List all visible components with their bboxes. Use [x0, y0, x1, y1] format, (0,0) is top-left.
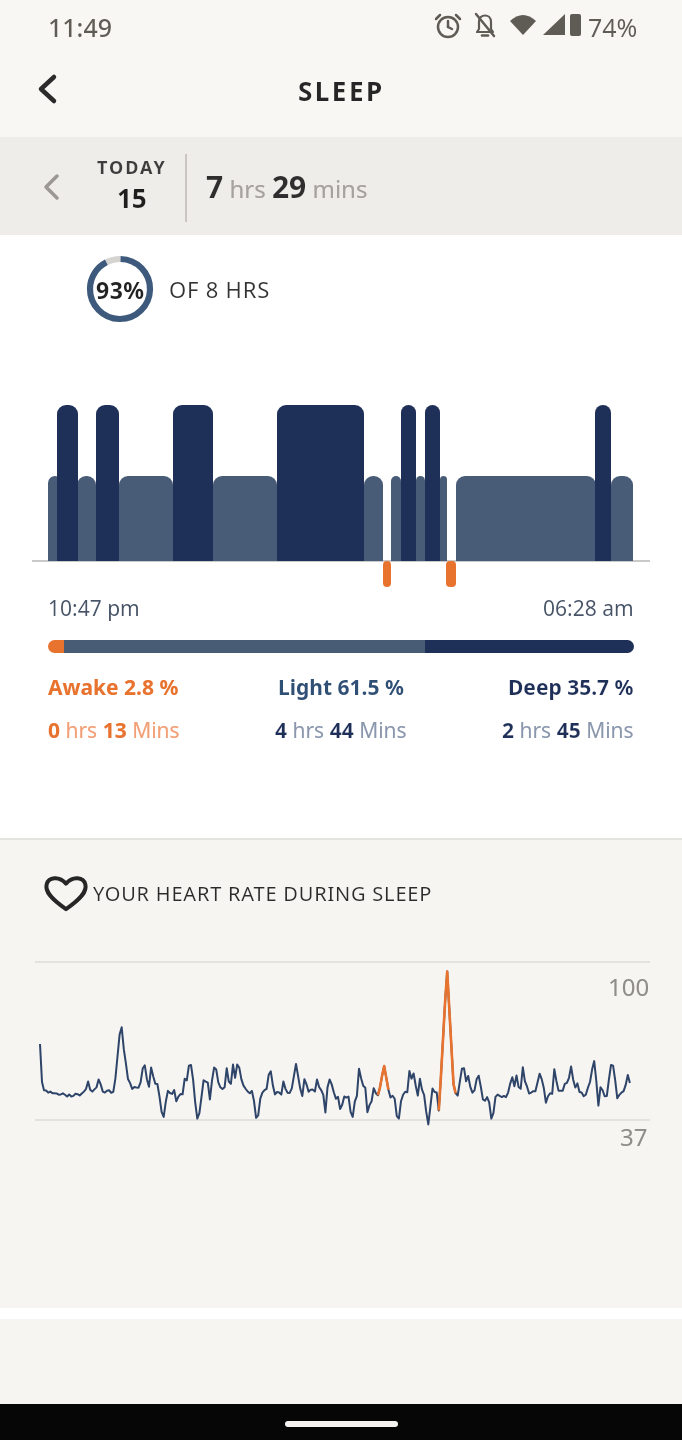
staticText: YOUR HEART RATE DURING SLEEP — [93, 880, 433, 907]
staticText: 4 hrs 44 Mins — [275, 716, 407, 745]
staticText: Awake 2.8 % — [48, 673, 179, 702]
staticText: 74% — [588, 10, 638, 40]
button[interactable] — [24, 66, 72, 114]
staticText: 100 — [608, 970, 650, 1000]
staticText: TODAY — [97, 155, 167, 180]
staticText: 06:28 am — [543, 594, 634, 623]
staticText: 15 — [117, 180, 147, 215]
staticText: OF 8 HRS — [169, 274, 271, 304]
staticText: 11:49 — [48, 10, 113, 40]
staticText: 2 hrs 45 Mins — [502, 716, 634, 745]
staticText: SLEEP — [298, 73, 385, 108]
staticText: Light 61.5 % — [278, 673, 404, 702]
button[interactable] — [0, 1404, 682, 1440]
button[interactable] — [32, 165, 72, 209]
staticText: 37 — [620, 1120, 648, 1150]
staticText: 7 hrs 29 mins — [206, 166, 368, 207]
staticText: 93% — [96, 274, 145, 305]
staticText: Deep 35.7 % — [508, 673, 634, 702]
staticText: 10:47 pm — [48, 594, 140, 623]
staticText: 0 hrs 13 Mins — [48, 716, 180, 745]
